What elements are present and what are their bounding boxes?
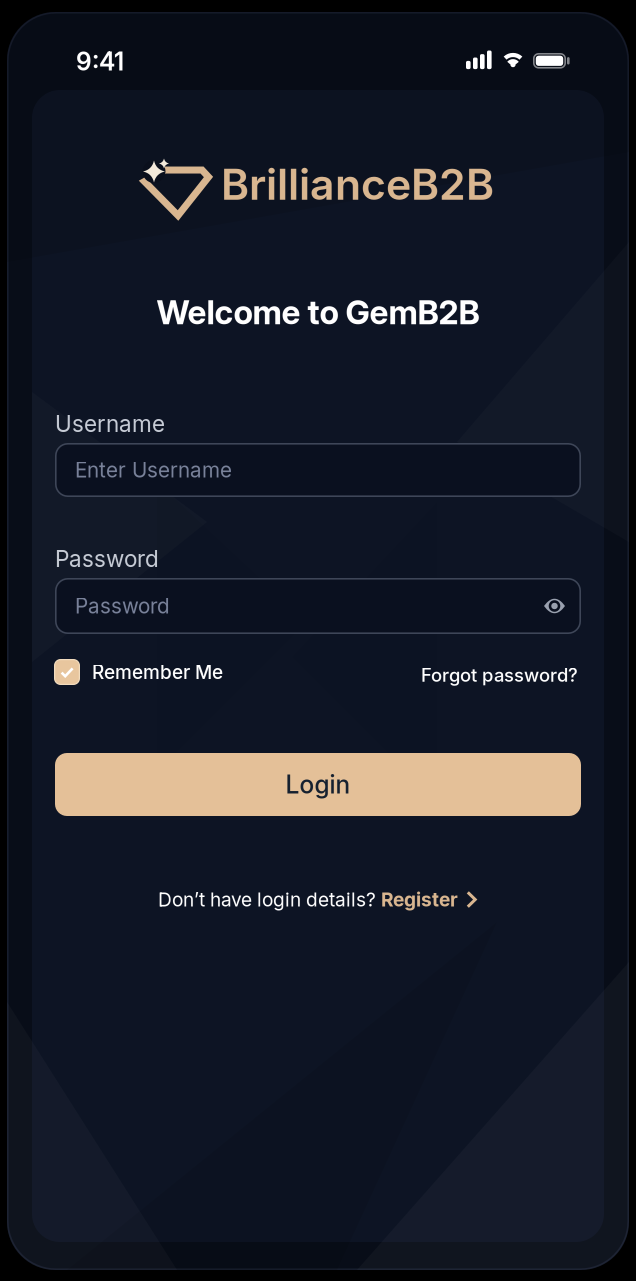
button[interactable]: Remember Me bbox=[54, 659, 223, 685]
staticText: BrillianceB2B bbox=[221, 158, 494, 210]
staticText: Remember Me bbox=[92, 660, 223, 683]
staticText: Username bbox=[55, 410, 165, 437]
button[interactable]: Forgot password? bbox=[421, 664, 578, 686]
button[interactable]: Don’t have login details? bbox=[158, 888, 478, 911]
button[interactable]: Login bbox=[55, 753, 581, 816]
staticText: Login bbox=[285, 770, 350, 799]
staticText: Password bbox=[55, 545, 159, 572]
staticText: Welcome to GemB2B bbox=[156, 292, 479, 332]
staticText: Password bbox=[75, 593, 170, 618]
staticText: 9:41 bbox=[76, 46, 124, 76]
staticText: Register bbox=[381, 888, 458, 911]
staticText: Forgot password? bbox=[421, 664, 578, 686]
button[interactable]: Show password bbox=[526, 578, 582, 634]
staticText: Don’t have login details? bbox=[158, 888, 376, 911]
staticText: Enter Username bbox=[75, 457, 232, 482]
